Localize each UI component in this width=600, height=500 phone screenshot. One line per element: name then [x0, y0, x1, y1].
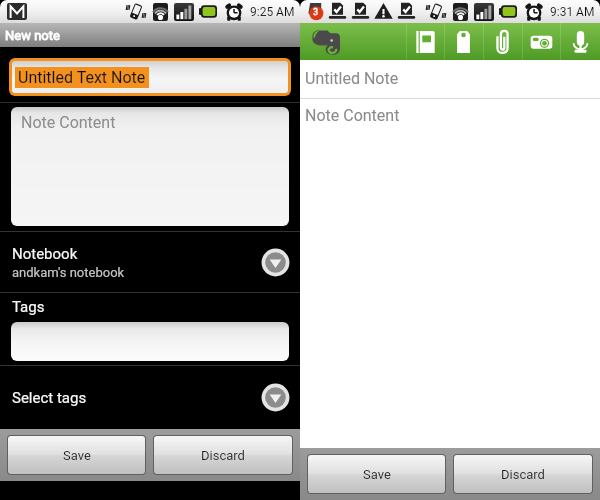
button[interactable]: Attach	[483, 23, 522, 60]
staticText: Save	[363, 467, 391, 482]
button[interactable]: Untitled Text Note	[12, 61, 288, 93]
other: Choose notebook	[260, 247, 291, 278]
staticText: Tags	[12, 298, 45, 316]
button[interactable]: Discard	[154, 436, 292, 474]
button[interactable]: Untitled Note	[300, 69, 600, 88]
button[interactable]: Evernote home	[300, 23, 406, 60]
button[interactable]: Tag	[444, 23, 483, 60]
staticText: 9:25 AM	[250, 5, 295, 19]
staticText: Discard	[501, 467, 545, 482]
staticText: Untitled Note	[305, 69, 399, 88]
button[interactable]: Record audio	[560, 23, 600, 60]
staticText: Notebook	[12, 245, 78, 263]
button[interactable]: Notebook	[406, 23, 444, 60]
staticText: New note	[5, 28, 60, 43]
button[interactable]: Note Content	[11, 107, 289, 226]
staticText: Select tags	[12, 389, 260, 407]
button[interactable]: Note Content	[300, 106, 600, 448]
staticText: Note Content	[21, 113, 116, 132]
staticText: Discard	[201, 448, 245, 463]
button[interactable]: Camera	[522, 23, 560, 60]
button[interactable]: Select tags	[0, 366, 300, 429]
button[interactable]: Notebook	[0, 232, 300, 292]
staticText: Note Content	[305, 106, 400, 125]
staticText: Untitled Text Note	[18, 68, 146, 87]
button[interactable]: Save	[8, 436, 145, 474]
button[interactable]	[11, 322, 289, 361]
staticText: 3	[313, 7, 319, 18]
staticText: andkam's notebook	[12, 265, 125, 280]
button[interactable]: Save	[308, 455, 445, 493]
staticText: Save	[63, 448, 91, 463]
staticText: 9:31 AM	[550, 5, 595, 19]
button[interactable]: Discard	[454, 455, 592, 493]
other: Select tags	[260, 382, 291, 413]
